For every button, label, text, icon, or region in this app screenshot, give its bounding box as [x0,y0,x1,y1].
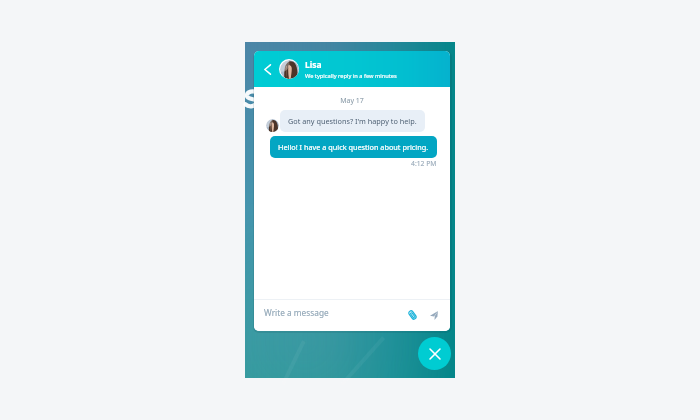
button[interactable]: Close chat [418,337,451,370]
staticText: Got any questions? I'm happy to help. [288,116,417,126]
staticText: We typically reply in a few minutes [305,72,397,80]
button[interactable]: Send [427,308,441,322]
staticText: Write a message [264,307,329,318]
staticText: Hello! I have a quick question about pri… [278,142,429,152]
button[interactable]: Back [258,60,276,78]
staticText: May 17 [254,96,450,106]
staticText: Lisa [305,59,322,71]
button[interactable]: Attach file [405,308,419,322]
staticText: 4:12 PM [411,159,437,168]
